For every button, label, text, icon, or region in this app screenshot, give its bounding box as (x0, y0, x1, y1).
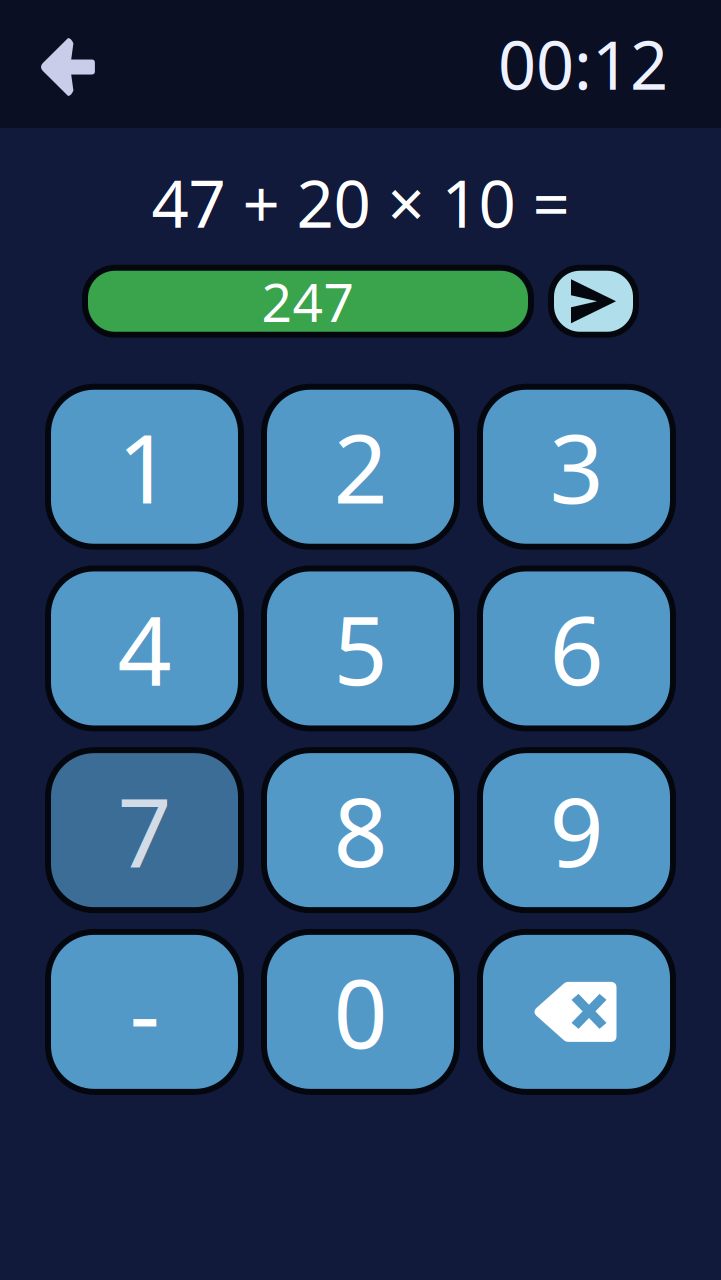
button[interactable]: Submit answer (548, 265, 639, 338)
staticText: 9 (549, 767, 603, 893)
staticText: 2 (333, 404, 387, 530)
staticText: 5 (333, 586, 387, 711)
button[interactable]: 2 (264, 387, 457, 547)
button[interactable]: 4 (48, 568, 241, 728)
button[interactable]: Back (0, 0, 136, 134)
staticText: 00:12 (498, 20, 668, 108)
staticText: 0 (333, 949, 387, 1075)
button[interactable]: - (48, 932, 241, 1092)
button[interactable]: Backspace (480, 932, 673, 1092)
staticText: - (129, 949, 159, 1075)
staticText: 1 (117, 404, 171, 530)
button[interactable]: 7 (48, 750, 241, 910)
button[interactable]: 0 (264, 932, 457, 1092)
staticText: 247 (261, 266, 354, 337)
staticText: 47 + 20 × 10 = (151, 159, 569, 246)
staticText: 6 (549, 586, 603, 711)
button[interactable]: 6 (480, 568, 673, 728)
button[interactable]: 5 (264, 568, 457, 728)
staticText: 8 (333, 767, 387, 893)
staticText: 7 (117, 767, 171, 893)
button[interactable]: 8 (264, 750, 457, 910)
button[interactable]: 1 (48, 387, 241, 547)
staticText: 3 (549, 404, 603, 530)
button[interactable]: 3 (480, 387, 673, 547)
button[interactable]: 9 (480, 750, 673, 910)
staticText: 4 (117, 586, 171, 711)
